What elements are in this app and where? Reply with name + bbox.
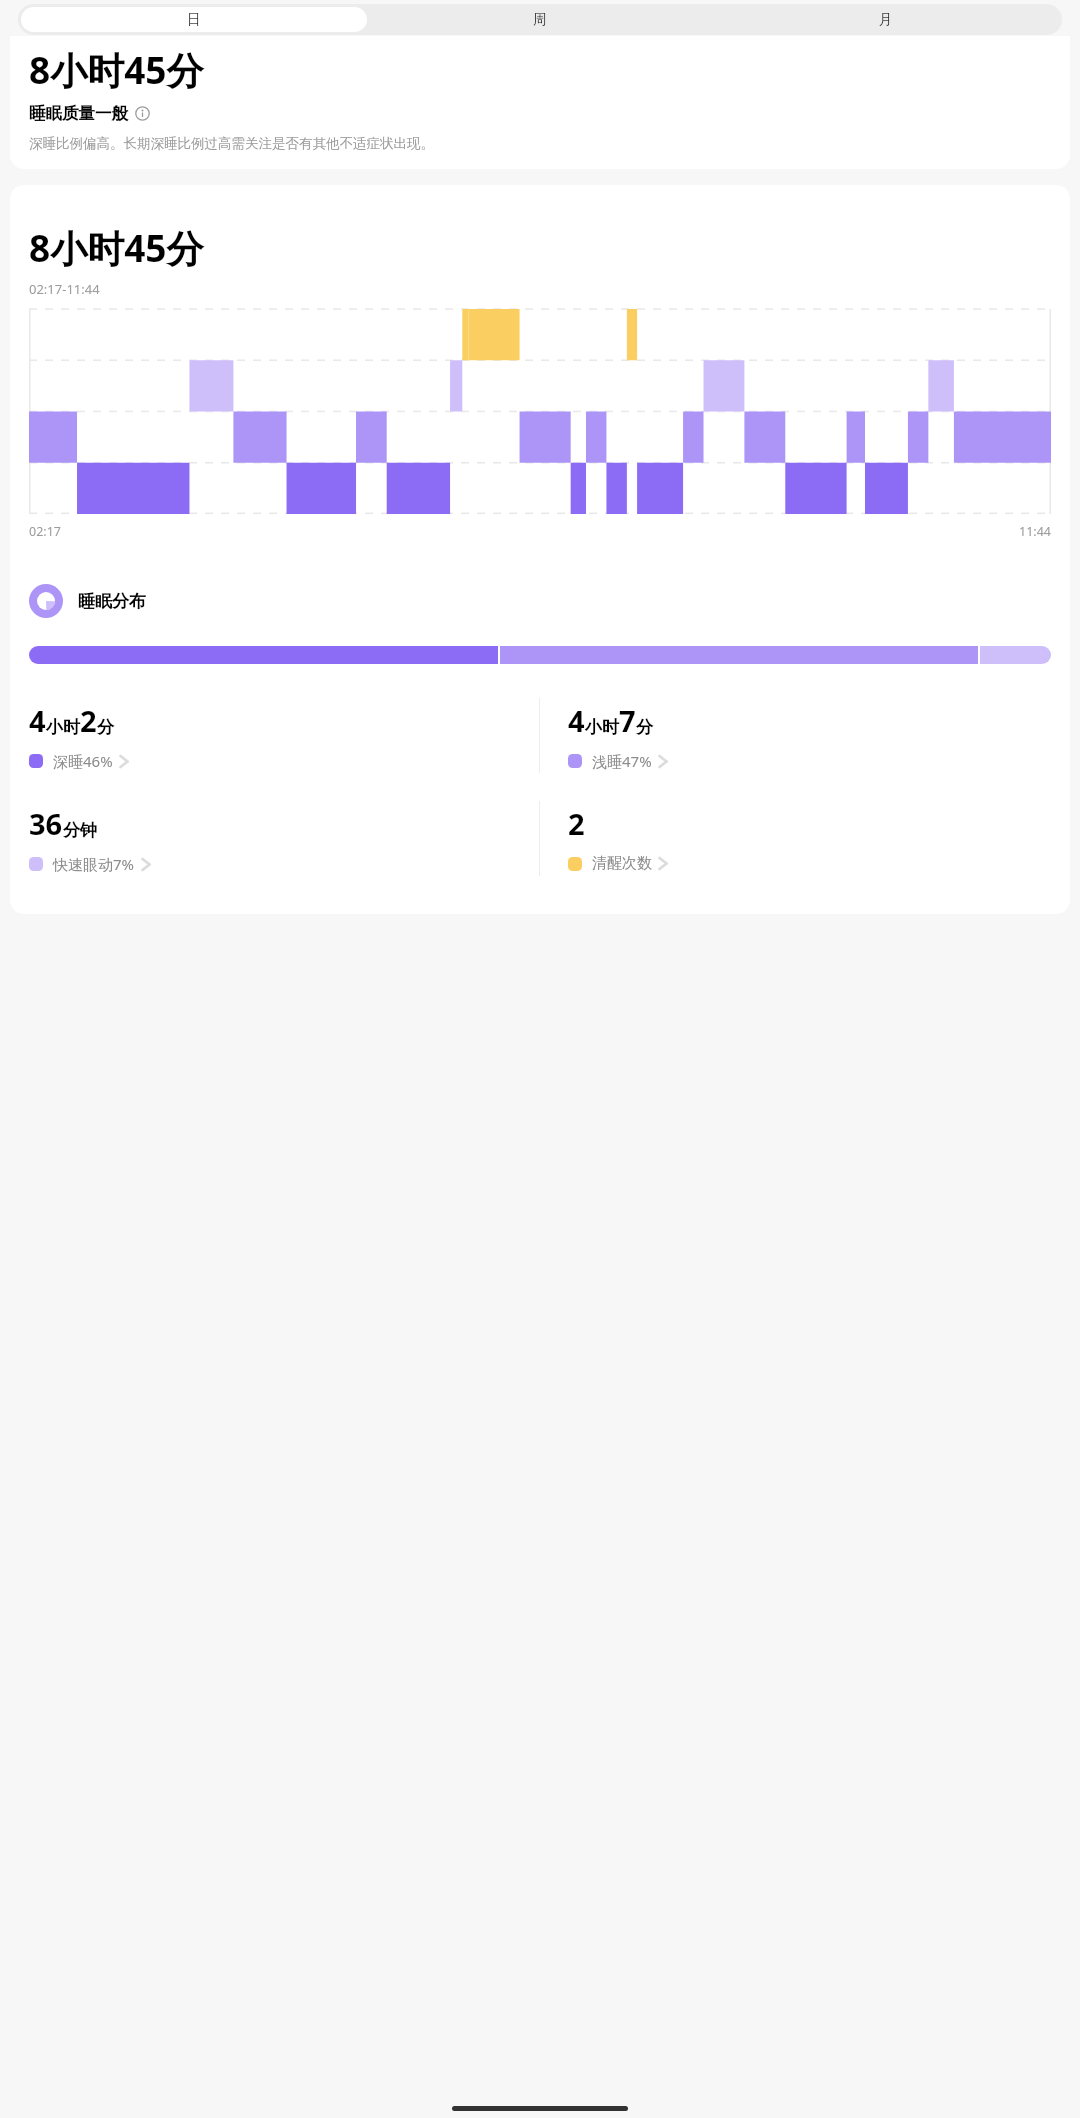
button[interactable]: 睡眠分布 [29, 584, 146, 618]
staticText: 分钟 [63, 820, 97, 841]
staticText: 8小时45分 [29, 44, 204, 95]
button[interactable]: 2 [568, 787, 1051, 890]
staticText: 周 [533, 11, 547, 28]
staticText: 8小时45分 [29, 222, 204, 273]
button[interactable]: 36 [29, 787, 539, 890]
button[interactable]: 4 [29, 684, 539, 787]
staticText: 分 [636, 717, 653, 738]
staticText: 11:44 [1019, 523, 1051, 540]
staticText: 2 [80, 701, 97, 740]
staticText: 月 [879, 11, 893, 28]
staticText: 日 [187, 11, 201, 28]
staticText: 深睡比例偏高。长期深睡比例过高需关注是否有其他不适症状出现。 [29, 135, 434, 152]
staticText: 4 [568, 701, 585, 740]
staticText: 清醒次数 [592, 854, 652, 873]
staticText: 7 [619, 701, 636, 740]
staticText: 快速眼动7% [53, 854, 135, 874]
button[interactable]: 说明 [135, 106, 150, 121]
staticText: 深睡46% [53, 751, 113, 771]
staticText: 小时 [46, 717, 80, 738]
staticText: 分 [97, 717, 114, 738]
staticText: 36 [29, 804, 63, 843]
staticText: 浅睡47% [592, 751, 652, 771]
button[interactable]: 日 [21, 7, 367, 32]
staticText: 睡眠质量一般 [29, 103, 128, 124]
staticText: 睡眠分布 [78, 591, 146, 612]
staticText: 02:17 [29, 523, 61, 540]
staticText: 02:17-11:44 [29, 280, 100, 298]
staticText: 小时 [585, 717, 619, 738]
button[interactable]: 月 [713, 7, 1059, 32]
staticText: 2 [568, 804, 585, 843]
button[interactable]: 周 [367, 7, 713, 32]
button[interactable]: 4 [568, 684, 1051, 787]
staticText: 4 [29, 701, 46, 740]
